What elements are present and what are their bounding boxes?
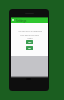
staticText: Settings: [16, 19, 27, 23]
button[interactable]: Yes: [26, 40, 33, 44]
staticText: You can opt in to download: [18, 30, 42, 33]
staticText: your data at any time: [20, 34, 39, 37]
button[interactable]: No: [26, 46, 33, 50]
staticText: Learn: [27, 37, 33, 40]
button[interactable]: App icon: [11, 17, 48, 23]
staticText: Yes: [28, 41, 32, 44]
staticText: No: [28, 47, 31, 50]
